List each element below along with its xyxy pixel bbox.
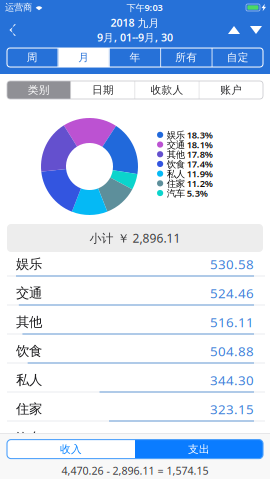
staticText: 524.46 — [210, 284, 254, 302]
button[interactable]: 年 — [110, 48, 160, 67]
button[interactable]: 周 — [7, 48, 58, 67]
staticText: 账户 — [220, 83, 242, 96]
button[interactable]: 月 — [58, 48, 109, 67]
staticText: 自定 — [227, 51, 249, 64]
staticText: 516.11 — [210, 313, 254, 331]
staticText: 汽车 5.3% — [167, 187, 208, 199]
staticText: 153.13 — [210, 429, 254, 447]
button[interactable]: 所有 — [161, 48, 212, 67]
button[interactable]: Back — [0, 15, 26, 45]
staticText: 支出 — [188, 442, 210, 456]
button[interactable]: 交通 — [0, 281, 270, 310]
button[interactable]: 饮食 — [0, 339, 270, 368]
staticText: 汽车 — [16, 430, 42, 446]
staticText: 530.58 — [210, 255, 254, 273]
staticText: 娱乐 18.3% — [167, 129, 213, 141]
button[interactable]: Previous month — [223, 15, 245, 45]
staticText: 日期 — [92, 83, 114, 96]
staticText: 其他 — [16, 314, 42, 330]
staticText: 住家 11.2% — [167, 177, 213, 190]
staticText: 344.30 — [210, 371, 254, 389]
staticText: 运营商 — [5, 2, 32, 13]
staticText: 私人 — [16, 372, 42, 388]
staticText: 饮食 17.4% — [167, 158, 213, 170]
button[interactable]: Next month — [245, 15, 270, 45]
staticText: 小计 ￥ 2,896.11 — [89, 230, 180, 246]
staticText: 私人 11.9% — [167, 167, 213, 180]
staticText: 4,470.26 - 2,896.11 = 1,574.15 — [61, 464, 208, 478]
staticText: 娱乐 — [16, 256, 42, 272]
staticText: 年 — [129, 51, 140, 64]
button[interactable]: 住家 — [0, 397, 270, 426]
button[interactable]: 其他 — [0, 310, 270, 339]
staticText: 住家 — [16, 401, 42, 417]
button[interactable]: 收入 — [7, 440, 135, 459]
button[interactable]: 支出 — [135, 440, 263, 459]
staticText: 下午9:03 — [126, 1, 162, 14]
staticText: 323.15 — [210, 400, 254, 418]
staticText: 504.88 — [210, 342, 254, 360]
staticText: 周 — [27, 51, 38, 64]
button[interactable]: 收款人 — [135, 81, 199, 99]
staticText: 收款人 — [151, 83, 184, 96]
staticText: 所有 — [175, 51, 197, 64]
staticText: 月 — [78, 51, 89, 64]
button[interactable]: 私人 — [0, 368, 270, 397]
button[interactable]: 自定 — [212, 48, 263, 67]
staticText: 类别 — [28, 83, 50, 96]
staticText: 交通 18.1% — [167, 138, 213, 151]
staticText: 2018 九月 — [110, 16, 159, 30]
button[interactable]: 汽车 — [0, 426, 270, 455]
button[interactable]: 娱乐 — [0, 252, 270, 281]
button[interactable]: 账户 — [199, 81, 263, 99]
staticText: 其他 17.8% — [167, 148, 213, 160]
staticText: 收入 — [60, 442, 82, 456]
staticText: 饮食 — [16, 343, 42, 359]
button[interactable]: 日期 — [71, 81, 135, 99]
staticText: 9月, 01--9月, 30 — [97, 30, 173, 44]
staticText: 交通 — [16, 285, 42, 301]
button[interactable]: 类别 — [7, 81, 70, 99]
